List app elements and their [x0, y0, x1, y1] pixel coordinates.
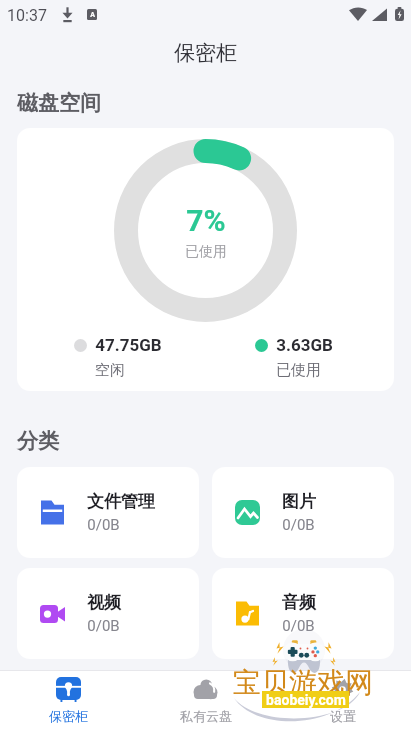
button[interactable]: 设置: [274, 671, 411, 730]
staticText: 0/0B: [87, 617, 120, 635]
staticText: 空闲: [95, 361, 125, 380]
staticText: 私有云盘: [180, 708, 232, 724]
staticText: 已使用: [276, 361, 321, 380]
staticText: 设置: [330, 708, 356, 724]
button[interactable]: 保密柜: [0, 671, 137, 730]
staticText: 10:37: [7, 6, 47, 25]
button[interactable]: 文件管理: [17, 467, 199, 558]
staticText: 7%: [186, 203, 226, 238]
button[interactable]: 视频: [17, 568, 199, 659]
staticText: 0/0B: [87, 516, 120, 534]
staticText: 音频: [282, 592, 316, 613]
staticText: 图片: [282, 491, 316, 512]
staticText: 保密柜: [174, 40, 237, 66]
staticText: A: [90, 11, 95, 19]
staticText: 47.75GB: [95, 335, 162, 355]
staticText: 已使用: [185, 243, 227, 261]
staticText: 文件管理: [87, 491, 155, 512]
staticText: 保密柜: [49, 708, 88, 724]
staticText: 磁盘空间: [17, 90, 101, 116]
staticText: baobeiy.com: [266, 692, 346, 708]
staticText: 视频: [87, 592, 121, 613]
button[interactable]: 音频: [212, 568, 394, 659]
staticText: 0/0B: [282, 516, 315, 534]
button[interactable]: 私有云盘: [137, 671, 274, 730]
staticText: 3.63GB: [276, 335, 333, 355]
staticText: 0/0B: [282, 617, 315, 635]
button[interactable]: 图片: [212, 467, 394, 558]
staticText: 分类: [17, 428, 59, 454]
staticText: 宝贝游戏网: [233, 665, 373, 700]
